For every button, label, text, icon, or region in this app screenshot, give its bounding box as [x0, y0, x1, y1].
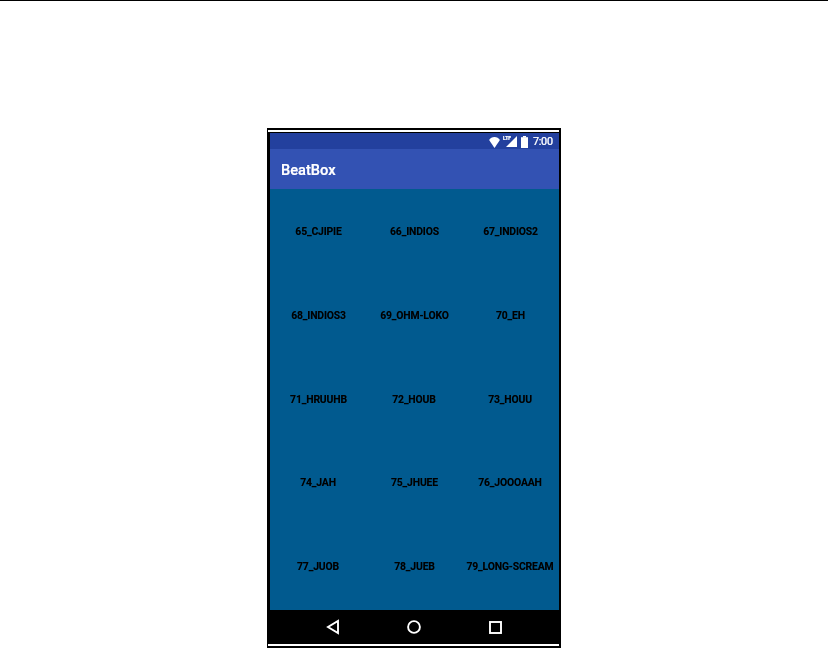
- button[interactable]: 73_HOUU: [462, 357, 558, 441]
- staticText: 73_HOUU: [488, 393, 532, 405]
- button[interactable]: Recent apps: [468, 610, 522, 644]
- staticText: 76_JOOOAAH: [478, 476, 542, 488]
- staticText: 77_JUOB: [297, 560, 339, 572]
- staticText: 7:00: [533, 135, 553, 148]
- staticText: 66_INDIOS: [390, 225, 439, 237]
- staticText: 68_INDIOS3: [291, 309, 346, 321]
- staticText: LTE: [503, 135, 511, 141]
- staticText: 74_JAH: [300, 476, 336, 488]
- button[interactable]: 71_HRUUHB: [270, 357, 366, 441]
- button[interactable]: 78_JUEB: [366, 524, 462, 608]
- staticText: 65_CJIPIE: [295, 225, 342, 237]
- staticText: 74_JAH: [300, 476, 336, 488]
- staticText: 76_JOOOAAH: [478, 476, 542, 488]
- staticText: 79_LONG-SCREAM: [466, 560, 554, 572]
- button[interactable]: 67_INDIOS2: [462, 189, 558, 273]
- staticText: 78_JUEB: [394, 560, 435, 572]
- button[interactable]: Back: [306, 610, 360, 644]
- button[interactable]: 70_EH: [462, 273, 558, 357]
- staticText: BeatBox: [281, 161, 336, 178]
- staticText: 72_HOUB: [392, 393, 436, 405]
- staticText: 69_OHM-LOKO: [380, 309, 449, 321]
- staticText: 75_JHUEE: [391, 476, 438, 488]
- staticText: 77_JUOB: [297, 560, 339, 572]
- button[interactable]: 76_JOOOAAH: [462, 440, 558, 524]
- button[interactable]: 65_CJIPIE: [270, 189, 366, 273]
- staticText: 67_INDIOS2: [483, 225, 538, 237]
- staticText: 71_HRUUHB: [290, 393, 347, 405]
- staticText: 70_EH: [496, 309, 525, 321]
- button[interactable]: Home: [387, 610, 441, 644]
- button[interactable]: 75_JHUEE: [366, 440, 462, 524]
- button[interactable]: 79_LONG-SCREAM: [462, 524, 558, 608]
- staticText: 79_LONG-SCREAM: [466, 560, 554, 572]
- button[interactable]: 66_INDIOS: [366, 189, 462, 273]
- button[interactable]: 69_OHM-LOKO: [366, 273, 462, 357]
- staticText: 78_JUEB: [394, 560, 435, 572]
- button[interactable]: 77_JUOB: [270, 524, 366, 608]
- staticText: 69_OHM-LOKO: [380, 309, 449, 321]
- staticText: 66_INDIOS: [390, 225, 439, 237]
- staticText: 75_JHUEE: [391, 476, 438, 488]
- staticText: 70_EH: [496, 309, 525, 321]
- staticText: 67_INDIOS2: [483, 225, 538, 237]
- button[interactable]: 68_INDIOS3: [270, 273, 366, 357]
- staticText: 72_HOUB: [392, 393, 436, 405]
- staticText: 73_HOUU: [488, 393, 532, 405]
- button[interactable]: 72_HOUB: [366, 357, 462, 441]
- button[interactable]: 74_JAH: [270, 440, 366, 524]
- staticText: 68_INDIOS3: [291, 309, 346, 321]
- staticText: 71_HRUUHB: [290, 393, 347, 405]
- staticText: 65_CJIPIE: [295, 225, 342, 237]
